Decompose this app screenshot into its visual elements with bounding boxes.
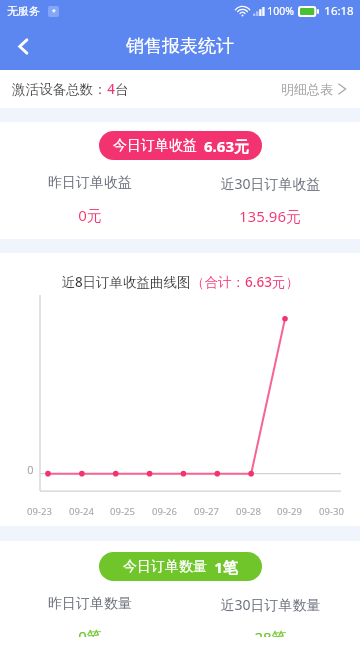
button[interactable]: Back [0,23,46,69]
staticText: 100% [267,4,294,18]
staticText: 09-25 [110,505,135,518]
staticText: 09-29 [277,505,302,518]
button[interactable]: 明细总表 [279,76,348,102]
staticText: 无服务 [7,4,40,18]
staticText: 1笔 [214,557,238,577]
staticText: 近8日订单收益曲线图 [61,273,191,291]
staticText: 4 [107,80,115,98]
staticText: 昨日订单收益 [48,174,132,192]
staticText: 16:18 [324,3,354,19]
staticText: 135.96元 [239,206,301,226]
staticText: 09-24 [69,505,94,518]
staticText: 09-28 [236,505,261,518]
staticText: * [52,7,56,17]
staticText: 近30日订单数量 [220,595,321,614]
staticText: 近30日订单收益 [220,174,321,193]
staticText: 6.63元 [204,136,249,156]
staticText: 台 [115,81,129,98]
staticText: 28笔 [254,627,287,637]
staticText: 激活设备总数： [12,81,107,98]
staticText: （合计：6.63元） [191,273,299,291]
staticText: 09-30 [319,505,344,518]
staticText: 今日订单数量 [123,558,207,576]
staticText: 0元 [78,205,102,225]
staticText: 09-26 [152,505,177,518]
staticText: 09-23 [27,505,52,518]
staticText: 09-27 [194,505,219,518]
staticText: 0 [27,462,34,477]
staticText: 明细总表 [281,81,333,97]
staticText: 0笔 [78,626,102,637]
staticText: 今日订单收益 [113,137,197,155]
button[interactable]: 今日订单收益 [99,131,262,160]
button[interactable]: 今日订单数量 [99,552,262,581]
staticText: 销售报表统计 [126,35,234,58]
staticText: 昨日订单数量 [48,595,132,613]
